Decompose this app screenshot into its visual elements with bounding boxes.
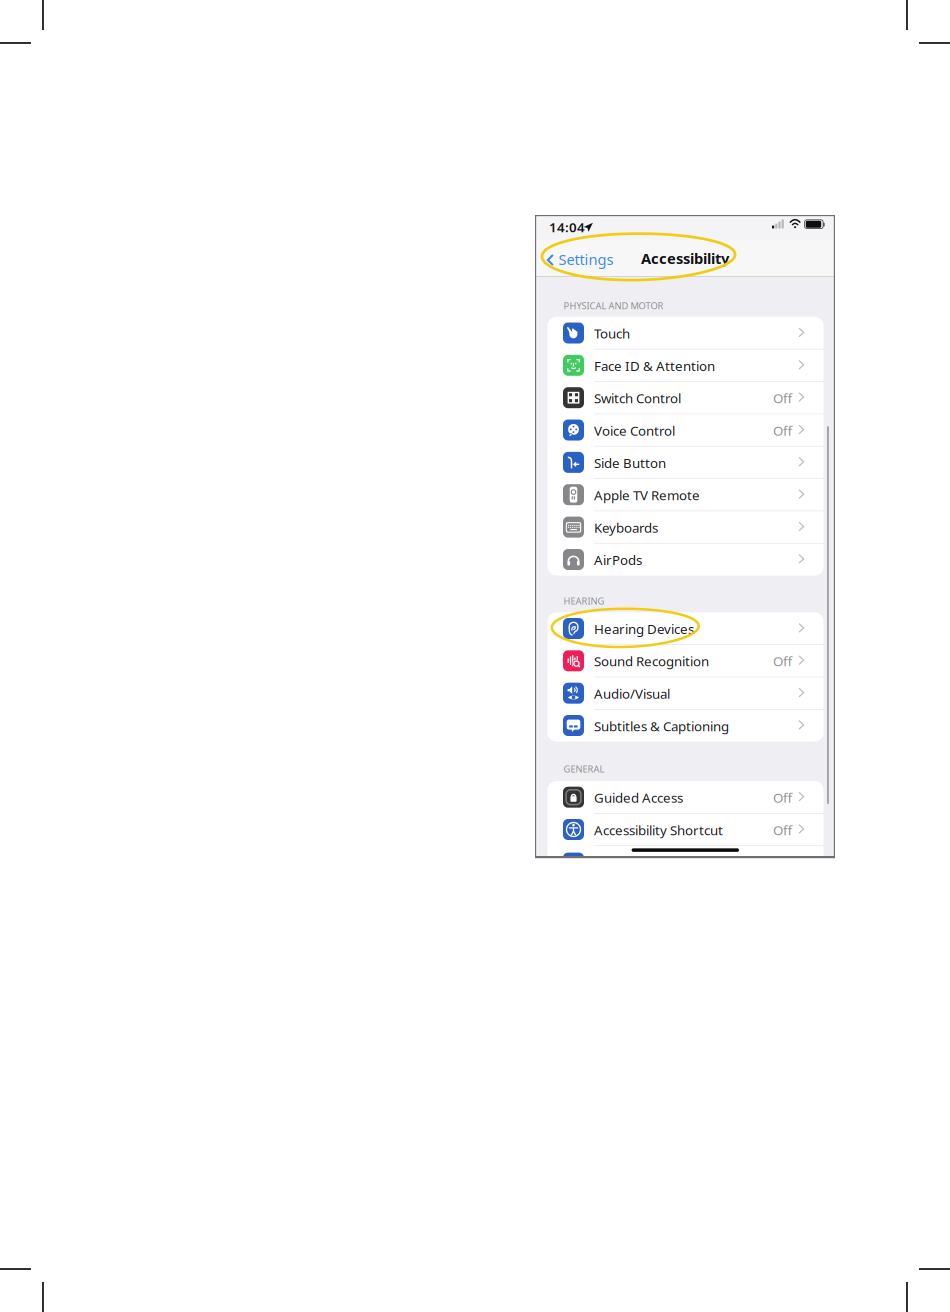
button[interactable]: Audio/Visual [547,677,823,709]
staticText: Face ID & Attention [594,357,715,375]
staticText: Accessibility [641,249,729,268]
staticText: 14:04 [549,218,585,236]
staticText: Sound Recognition [594,652,709,670]
button[interactable]: Face ID & Attention [547,349,823,382]
staticText: GENERAL [563,763,604,775]
button[interactable]: Keyboards [547,511,823,543]
staticText: Off [773,389,792,407]
staticText: Side Button [594,454,666,472]
staticText: Settings [558,249,613,269]
button[interactable]: AirPods [547,543,823,576]
button[interactable]: Subtitles & Captioning [547,709,823,742]
button[interactable]: Touch [547,317,823,349]
staticText: Keyboards [594,519,658,536]
button[interactable]: Sound Recognition [547,645,823,677]
staticText: Guided Access [594,789,683,806]
staticText: Apple TV Remote [594,486,700,504]
button[interactable]: Voice Control [547,414,823,446]
staticText: PHYSICAL AND MOTOR [563,299,663,312]
staticText: Off [773,422,792,439]
staticText: Hearing Devices [594,620,694,638]
staticText: Voice Control [594,422,675,439]
button[interactable]: Spoken Content [547,847,823,879]
button[interactable]: Switch Control [547,381,823,414]
staticText: AirPods [594,551,642,569]
staticText: Spoken Content [594,855,693,872]
button[interactable]: Apple TV Remote [547,479,823,511]
button[interactable]: Accessibility Shortcut [547,813,823,846]
staticText: Off [773,789,792,806]
button[interactable]: Hearing Devices [547,612,823,645]
staticText: Off [773,652,792,670]
staticText: Audio/Visual [594,685,670,702]
staticText: Accessibility Shortcut [594,821,723,839]
button[interactable]: Side Button [547,446,823,479]
button[interactable]: Guided Access [547,781,823,813]
staticText: Touch [594,324,630,342]
staticText: Subtitles & Captioning [594,717,729,735]
button[interactable]: Settings [544,246,612,272]
staticText: HEARING [563,595,604,607]
staticText: Off [773,821,792,839]
staticText: Switch Control [594,389,681,407]
